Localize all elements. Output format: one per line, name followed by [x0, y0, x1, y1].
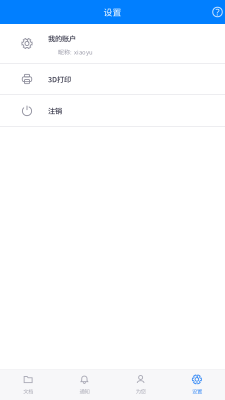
button[interactable]: 设置	[169, 370, 225, 400]
staticText: 我的账户	[48, 33, 76, 44]
button[interactable]: 3D打印	[0, 64, 225, 95]
staticText: 为您	[136, 387, 146, 395]
staticText: ?	[215, 6, 219, 18]
staticText: 文档	[23, 387, 33, 395]
staticText: 设置	[192, 387, 202, 395]
staticText: 昵称: xiaoyu	[58, 48, 93, 56]
staticText: 设置	[103, 6, 121, 18]
button[interactable]: Help	[210, 2, 224, 22]
button[interactable]: 注销	[0, 95, 225, 127]
button[interactable]: 文档	[0, 370, 56, 400]
button[interactable]: 通知	[56, 370, 112, 400]
button[interactable]: 为您	[112, 370, 169, 400]
staticText: 通知	[79, 387, 89, 395]
staticText: 注销	[48, 105, 62, 116]
button[interactable]: 我的账户	[0, 24, 225, 64]
staticText: 3D打印	[48, 74, 71, 84]
